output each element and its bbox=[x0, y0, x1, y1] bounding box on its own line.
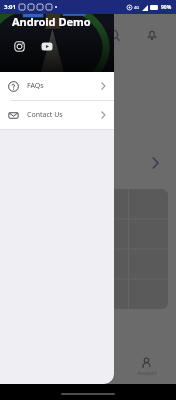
staticText: 3:01 bbox=[4, 3, 16, 11]
staticText: Contact Us bbox=[27, 110, 63, 120]
button[interactable]: Search bbox=[104, 25, 124, 45]
staticText: Android Demo bbox=[12, 14, 91, 29]
button[interactable]: YouTube bbox=[40, 39, 54, 53]
button[interactable]: Instagram bbox=[12, 39, 26, 53]
button[interactable]: Contact Us bbox=[0, 101, 114, 129]
button[interactable]: FAQs bbox=[0, 72, 114, 100]
button[interactable]: Cards bbox=[58, 350, 117, 384]
staticText: FAQs bbox=[27, 81, 44, 91]
staticText: 4G bbox=[134, 5, 140, 10]
staticText: 90% bbox=[161, 4, 172, 11]
button[interactable] bbox=[10, 189, 168, 309]
button[interactable]: Account bbox=[117, 350, 176, 384]
staticText: Account bbox=[137, 370, 157, 377]
button[interactable]: Notifications bbox=[142, 25, 162, 45]
button[interactable]: More bbox=[146, 154, 164, 172]
